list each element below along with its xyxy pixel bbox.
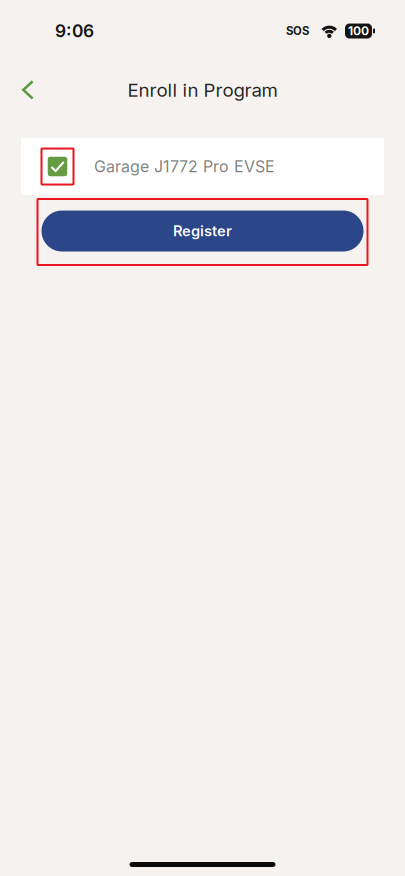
staticText: 9:06 — [55, 20, 94, 41]
staticText: Register — [173, 222, 232, 240]
button[interactable]: Back — [11, 68, 45, 112]
button[interactable]: Garage J1772 Pro EVSE — [21, 138, 384, 195]
staticText: 100 — [348, 24, 369, 38]
staticText: Garage J1772 Pro EVSE — [94, 157, 275, 176]
staticText: Enroll in Program — [127, 79, 277, 101]
button[interactable]: Register — [37, 199, 367, 265]
staticText: SOS — [286, 24, 309, 38]
